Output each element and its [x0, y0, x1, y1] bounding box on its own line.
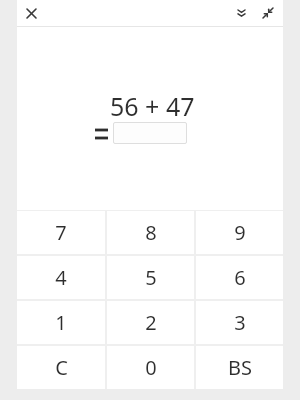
button[interactable] — [254, 0, 281, 26]
staticText: 7 — [55, 219, 67, 246]
button[interactable]: 0 — [107, 346, 194, 389]
button[interactable]: 7 — [17, 211, 105, 254]
button[interactable]: 2 — [107, 301, 194, 344]
staticText: BS — [228, 354, 252, 381]
staticText: 5 — [145, 264, 157, 291]
staticText: 8 — [145, 219, 157, 246]
button[interactable]: 1 — [17, 301, 105, 344]
button[interactable]: 4 — [17, 256, 105, 299]
button[interactable]: 6 — [196, 256, 283, 299]
button[interactable]: 5 — [107, 256, 194, 299]
button[interactable]: BS — [196, 346, 283, 389]
button[interactable]: 8 — [107, 211, 194, 254]
staticText: 2 — [145, 309, 157, 336]
button[interactable] — [17, 0, 45, 26]
staticText: 3 — [234, 309, 246, 336]
staticText: 56 + 47 — [110, 89, 195, 123]
staticText: 6 — [234, 264, 246, 291]
button[interactable]: C — [17, 346, 105, 389]
button[interactable]: 9 — [196, 211, 283, 254]
button[interactable] — [228, 0, 254, 26]
staticText: 0 — [145, 354, 157, 381]
staticText: C — [55, 354, 68, 381]
button[interactable]: 3 — [196, 301, 283, 344]
staticText: 1 — [55, 309, 67, 336]
button[interactable] — [113, 122, 187, 144]
staticText: 4 — [55, 264, 67, 291]
staticText: 9 — [234, 219, 246, 246]
